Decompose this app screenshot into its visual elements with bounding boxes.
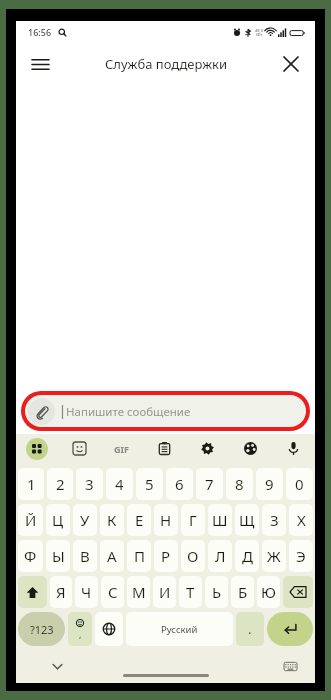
button[interactable]: Ю — [257, 576, 280, 608]
button[interactable]: О — [181, 540, 205, 572]
button[interactable]: Р — [154, 540, 178, 572]
staticText: Ц — [52, 510, 64, 530]
button[interactable]: Ж — [262, 540, 286, 572]
button[interactable]: К — [100, 504, 124, 536]
staticText: 16:56 — [28, 26, 52, 38]
button[interactable]: Скрыть клавиатуру — [46, 655, 68, 677]
button[interactable]: Shift — [18, 576, 47, 608]
button[interactable]: Приложения — [16, 434, 58, 463]
staticText: У — [80, 510, 90, 530]
button[interactable]: У — [73, 504, 97, 536]
button[interactable]: М — [127, 576, 150, 608]
staticText: К — [107, 510, 117, 530]
button[interactable]: Е — [127, 504, 151, 536]
button[interactable]: Т — [179, 576, 202, 608]
button[interactable]: С — [101, 576, 124, 608]
button[interactable]: Ввод — [267, 612, 313, 646]
button[interactable]: Буфер обмена — [143, 434, 186, 463]
staticText: 2 — [56, 474, 65, 494]
button[interactable]: В — [73, 540, 97, 572]
staticText: Н — [160, 510, 172, 530]
button[interactable]: ?123 — [18, 612, 65, 646]
button[interactable]: Прикрепить файл — [28, 398, 55, 425]
staticText: М — [132, 582, 146, 602]
staticText: . — [248, 620, 252, 638]
button[interactable]: 2 — [47, 468, 73, 500]
staticText: Ч — [81, 582, 92, 602]
button[interactable]: 3 — [76, 468, 103, 500]
button[interactable]: 5 — [136, 468, 163, 500]
button[interactable]: Сменить язык — [95, 612, 123, 646]
staticText: С — [108, 582, 118, 602]
staticText: KB/s — [256, 33, 263, 37]
button[interactable]: З — [262, 504, 286, 536]
button[interactable]: Настройки — [186, 434, 229, 463]
staticText: 7 — [205, 474, 214, 494]
staticText: ?123 — [30, 622, 54, 637]
button[interactable]: П — [127, 540, 151, 572]
staticText: П — [134, 546, 145, 566]
button[interactable]: Голосовой ввод — [272, 434, 315, 463]
button[interactable]: Темы — [229, 434, 272, 463]
staticText: В — [80, 546, 90, 566]
button[interactable]: Настройки клавиатуры — [279, 655, 301, 677]
button[interactable]: Ч — [75, 576, 98, 608]
button[interactable]: Ф — [18, 540, 43, 572]
staticText: 3 — [85, 474, 94, 494]
button[interactable]: И — [153, 576, 176, 608]
button[interactable]: Л — [208, 540, 232, 572]
button[interactable]: Удалить — [283, 576, 313, 608]
button[interactable]: Я — [50, 576, 72, 608]
button[interactable]: Д — [235, 540, 259, 572]
button[interactable]: Й — [18, 504, 43, 536]
button[interactable]: Х — [289, 504, 313, 536]
staticText: Л — [215, 546, 226, 566]
button[interactable]: Стикеры — [58, 434, 100, 463]
staticText: Русский — [161, 623, 198, 636]
button[interactable]: Ы — [46, 540, 70, 572]
button[interactable]: . — [236, 612, 264, 646]
staticText: Напишите сообщение — [66, 404, 191, 420]
button[interactable]: GIF — [100, 434, 143, 463]
staticText: Ф — [24, 546, 37, 566]
staticText: Г — [189, 510, 197, 530]
button[interactable]: Н — [154, 504, 178, 536]
button[interactable]: 1 — [18, 468, 44, 500]
staticText: Ю — [261, 582, 276, 602]
staticText: GIF — [114, 443, 129, 455]
staticText: 9 — [265, 474, 274, 494]
staticText: Х — [297, 510, 306, 530]
button[interactable]: А — [100, 540, 124, 572]
button[interactable]: 8 — [226, 468, 253, 500]
staticText: А — [107, 546, 117, 566]
staticText: 1 — [27, 474, 36, 494]
button[interactable]: Ц — [46, 504, 70, 536]
button[interactable]: 9 — [256, 468, 283, 500]
button[interactable]: 0 — [286, 468, 313, 500]
button[interactable]: Прикрепить файл — [25, 395, 306, 427]
staticText: 48,0 — [255, 28, 263, 33]
staticText: Т — [186, 582, 195, 602]
button[interactable]: Щ — [235, 504, 259, 536]
button[interactable]: Эмодзи и запятая — [68, 612, 92, 646]
button[interactable]: Меню — [22, 46, 58, 82]
staticText: Э — [296, 546, 306, 566]
button[interactable]: Русский — [126, 612, 233, 646]
staticText: Ы — [52, 546, 65, 566]
staticText: 4 — [115, 474, 124, 494]
staticText: Д — [242, 546, 253, 566]
button[interactable]: 7 — [196, 468, 223, 500]
staticText: Ш — [212, 510, 228, 530]
staticText: 6 — [175, 474, 184, 494]
button[interactable]: Б — [231, 576, 254, 608]
button[interactable]: Ш — [208, 504, 232, 536]
button[interactable]: 4 — [106, 468, 133, 500]
button[interactable]: Э — [289, 540, 313, 572]
button[interactable]: Г — [181, 504, 205, 536]
button[interactable]: Ь — [205, 576, 228, 608]
staticText: Я — [56, 582, 66, 602]
staticText: Б — [238, 582, 248, 602]
button[interactable]: 6 — [166, 468, 193, 500]
button[interactable]: Закрыть — [273, 46, 309, 82]
staticText: Служба поддержки — [105, 55, 227, 73]
